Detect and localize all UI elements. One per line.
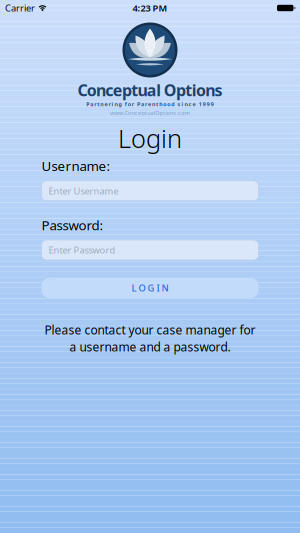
staticText: L O G I N	[131, 282, 168, 294]
staticText: Password:	[41, 216, 103, 234]
staticText: Partnering for Parenthood since 1999	[86, 101, 214, 108]
staticText: www.ConceptualOptions.com	[110, 109, 190, 116]
staticText: Carrier	[5, 2, 35, 14]
button[interactable]: Username	[41, 181, 258, 201]
staticText: Please contact your case manager for	[44, 322, 255, 338]
staticText: Username:	[41, 157, 110, 175]
button[interactable]: LOGIN	[41, 278, 258, 298]
staticText: a username and a password.	[69, 339, 230, 355]
staticText: 4:23 PM	[132, 2, 167, 14]
button[interactable]: Password	[41, 240, 258, 260]
staticText: Enter Password	[48, 244, 115, 256]
staticText: Conceptual Options	[77, 79, 223, 101]
staticText: Login	[118, 121, 182, 155]
staticText: Enter Username	[48, 185, 118, 197]
